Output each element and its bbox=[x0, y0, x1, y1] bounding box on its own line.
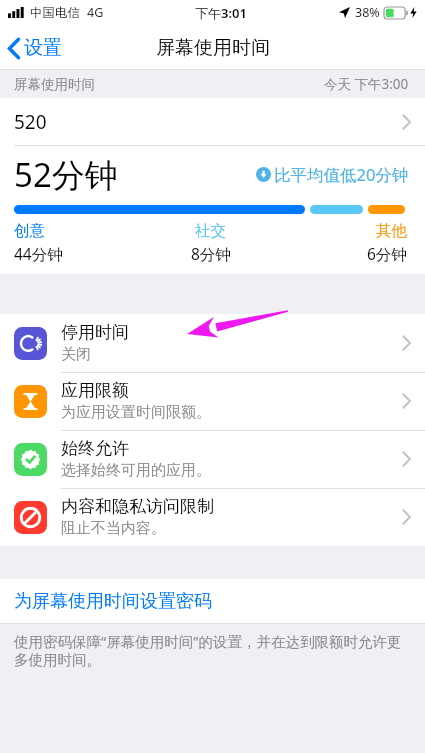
staticText: 社交 bbox=[195, 221, 226, 241]
staticText: 44分钟 bbox=[14, 243, 63, 264]
button[interactable]: 设置 bbox=[0, 32, 70, 64]
staticText: 应用限额 bbox=[61, 380, 129, 401]
staticText: 关闭 bbox=[61, 345, 91, 364]
staticText: 创意 bbox=[14, 221, 45, 241]
button[interactable]: 始终允许 bbox=[0, 430, 425, 488]
staticText: 选择始终可用的应用。 bbox=[61, 461, 211, 480]
staticText: 内容和隐私访问限制 bbox=[61, 496, 214, 517]
staticText: 使用密码保障“屏幕使用时间”的设置，并在达到限额时允许更多使用时间。 bbox=[14, 631, 407, 669]
staticText: 中国电信 bbox=[30, 5, 80, 21]
button[interactable]: 应用限额 bbox=[0, 372, 425, 430]
staticText: 为应用设置时间限额。 bbox=[61, 403, 211, 422]
staticText: 屏幕使用时间 bbox=[14, 76, 95, 93]
staticText: 6分钟 bbox=[367, 243, 407, 264]
staticText: 52分钟 bbox=[14, 152, 118, 197]
button[interactable]: 为屏幕使用时间设置密码 bbox=[0, 579, 425, 624]
staticText: 8分钟 bbox=[191, 243, 231, 264]
button[interactable]: 内容和隐私访问限制 bbox=[0, 488, 425, 546]
staticText: 38% bbox=[355, 4, 380, 21]
staticText: 今天 下午3:00 bbox=[324, 75, 409, 93]
staticText: 停用时间 bbox=[61, 322, 129, 343]
staticText: 4G bbox=[87, 4, 104, 21]
button[interactable]: 520 bbox=[0, 98, 425, 146]
staticText: 520 bbox=[14, 109, 47, 135]
staticText: 为屏幕使用时间设置密码 bbox=[14, 590, 212, 613]
staticText: 屏幕使用时间 bbox=[156, 36, 270, 60]
staticText: 比平均值低20分钟 bbox=[274, 163, 409, 186]
staticText: 阻止不当内容。 bbox=[61, 519, 166, 538]
staticText: 始终允许 bbox=[61, 438, 129, 459]
staticText: 设置 bbox=[24, 36, 62, 60]
staticText: 其他 bbox=[376, 221, 407, 241]
staticText: 下午3:01 bbox=[195, 4, 247, 22]
button[interactable]: 停用时间 bbox=[0, 314, 425, 372]
